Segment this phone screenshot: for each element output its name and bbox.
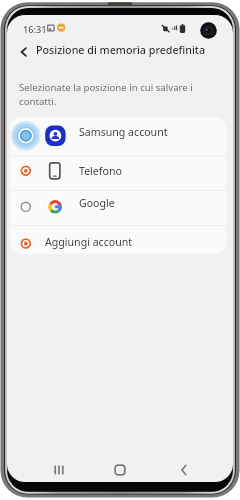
staticText: Google — [79, 196, 115, 210]
staticText: Telefono — [79, 164, 122, 178]
button[interactable]: Aggiungi account — [10, 225, 226, 254]
button[interactable]: Recent apps — [46, 457, 72, 482]
staticText: Selezionate la posizione in cui salvare … — [19, 81, 197, 108]
button[interactable]: Telefono — [10, 156, 226, 190]
button[interactable]: Google — [10, 190, 226, 225]
button[interactable]: Back — [13, 41, 35, 63]
button[interactable]: Samsung account — [10, 117, 226, 156]
button[interactable]: Home — [107, 457, 133, 482]
button[interactable]: Back — [171, 457, 197, 482]
staticText: Samsung account — [79, 125, 168, 139]
staticText: Aggiungi account — [45, 235, 133, 249]
staticText: Posizione di memoria predefinita — [36, 43, 206, 58]
staticText: 16:31 — [23, 23, 47, 36]
